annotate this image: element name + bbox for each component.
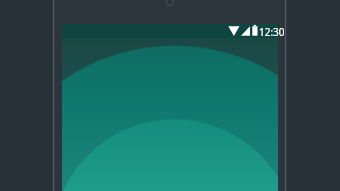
staticText: 12:30 [259, 25, 285, 39]
button[interactable]: Clock 12:30 [259, 25, 285, 39]
